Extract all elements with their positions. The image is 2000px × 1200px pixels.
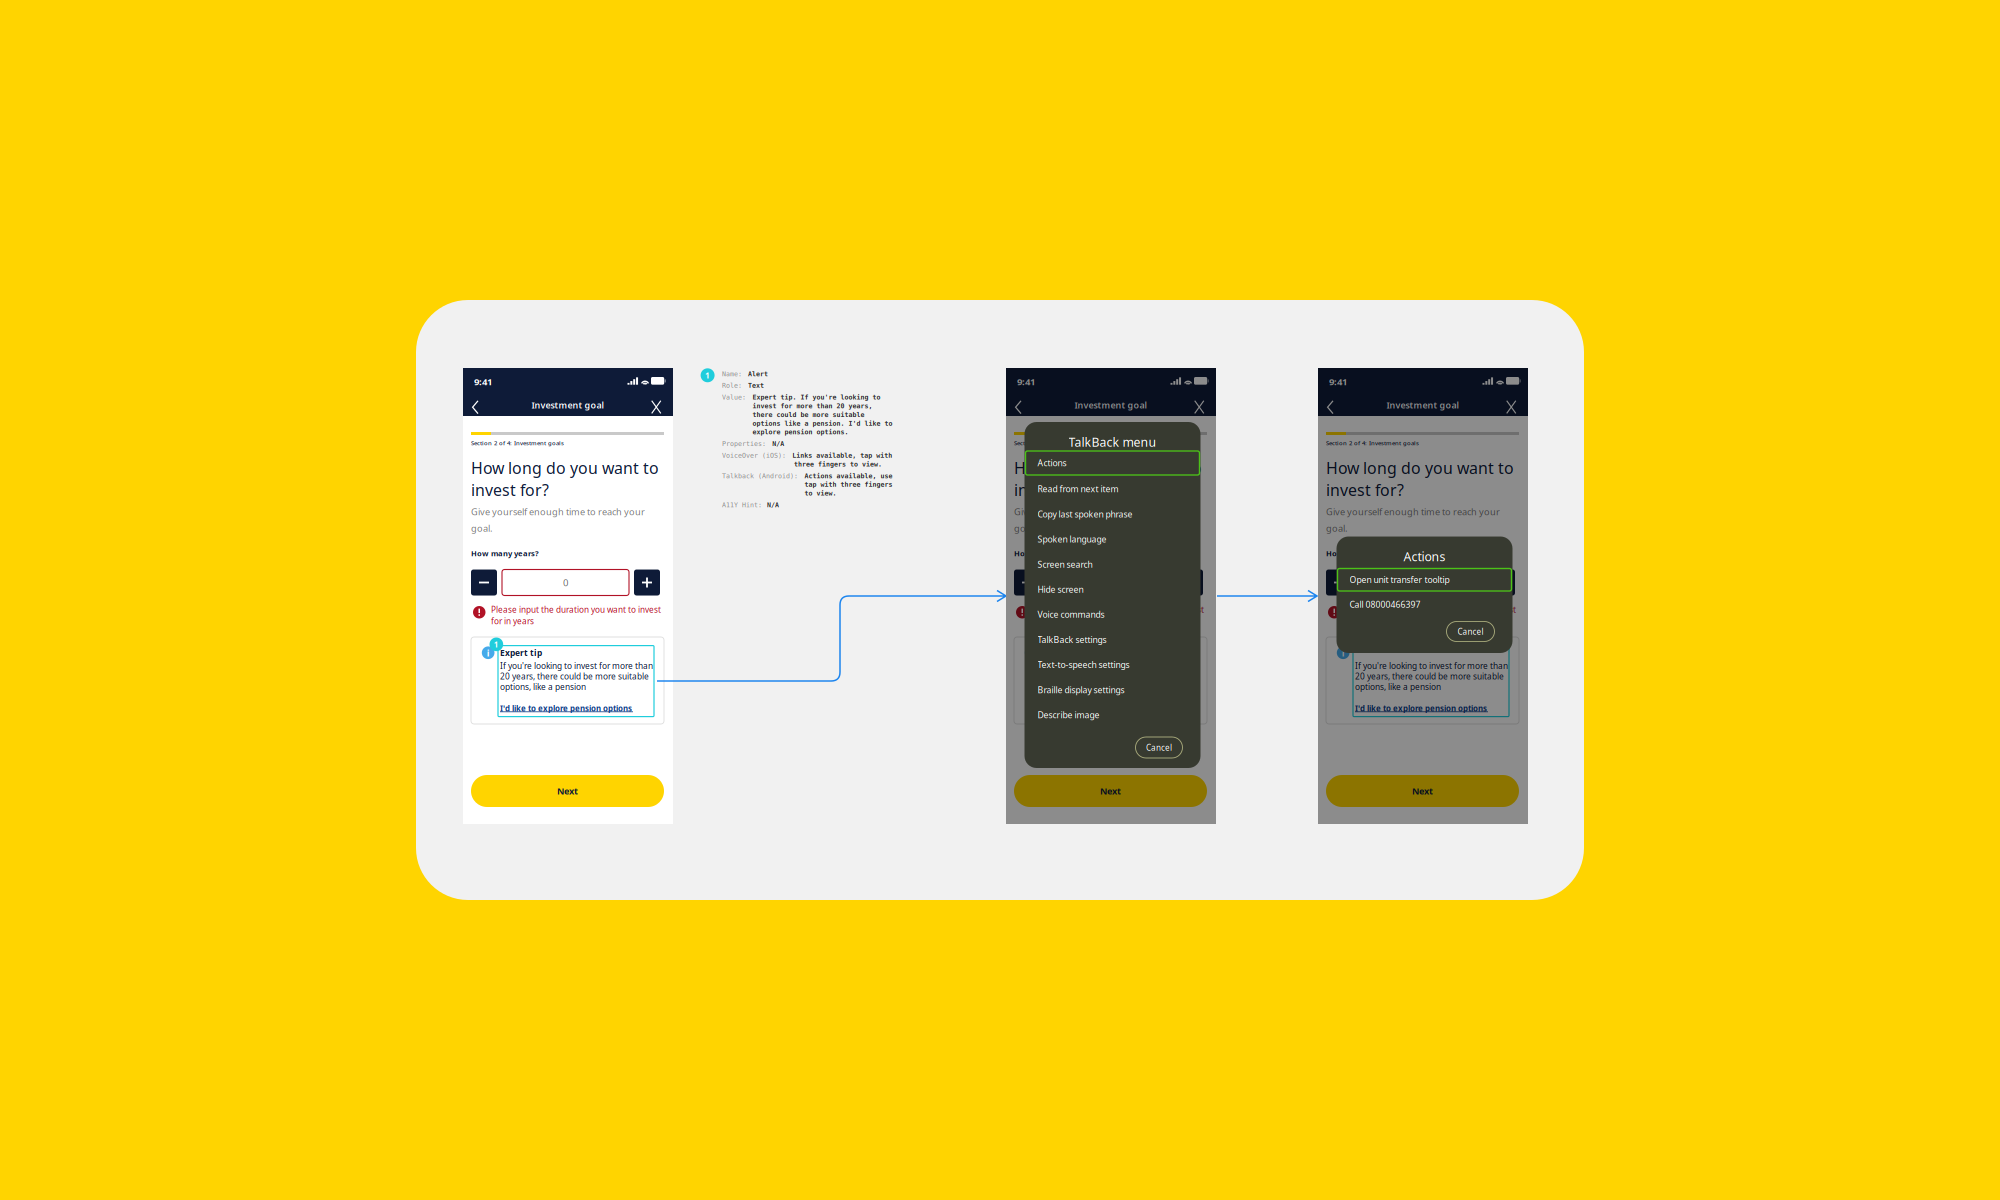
staticText: options, like a pension [1355,681,1441,692]
button[interactable]: Back [466,395,484,419]
staticText: Links available, tap with [792,452,892,459]
button[interactable]: Cancel [1135,737,1182,758]
staticText: Expert tip [500,647,542,658]
staticText: Investment goal [1386,399,1459,411]
staticText: i [487,646,490,659]
button[interactable]: Hide screen [1024,577,1200,602]
button[interactable]: Read from next item [1024,476,1200,501]
button[interactable]: Call 08000466397 [1336,594,1512,614]
staticText: Give yourself enough time to reach your [1014,505,1188,518]
staticText: tap with three fingers [805,481,893,488]
staticText: Open unit transfer tooltip [1349,574,1449,586]
staticText: Give yourself enough time to reach your [471,505,645,518]
staticText: Actions [1403,548,1445,565]
staticText: 0 [563,576,568,589]
staticText: options, like a pension [500,681,586,692]
button[interactable]: Back [1321,395,1339,419]
button[interactable]: Next [1014,775,1207,807]
button[interactable]: Decrease years [1014,569,1040,595]
button[interactable]: Describe image [1024,702,1200,727]
button[interactable]: Copy last spoken phrase [1024,502,1200,527]
button[interactable]: Back [1009,395,1027,419]
staticText: I'd like to explore pension options [500,703,632,714]
button[interactable]: Decrease years [1326,569,1352,595]
button[interactable]: Decrease years [471,569,497,595]
staticText: 9:41 [474,375,492,388]
staticText: Screen search [1037,558,1092,570]
staticText: Give yourself enough time to reach your [1326,505,1500,518]
staticText: TalkBack menu [1068,434,1156,450]
staticText: i [1342,646,1345,659]
button[interactable]: Text-to-speech settings [1024,652,1200,677]
staticText: Copy last spoken phrase [1037,508,1132,520]
staticText: Section 2 of 4: Investment goals [471,439,564,447]
staticText: 1 [494,639,499,650]
button[interactable]: Increase years [1177,569,1203,595]
staticText: Next [1412,785,1433,797]
button[interactable]: Voice commands [1024,602,1200,627]
button[interactable]: Open unit transfer tooltip [1337,568,1511,591]
staticText: goal. [1326,522,1347,534]
button[interactable]: Close [1501,395,1521,419]
staticText: Spoken language [1037,533,1106,545]
staticText: How many years? [471,548,539,558]
button[interactable]: Close [646,395,666,419]
staticText: for in years [491,615,534,627]
staticText: Hide screen [1037,583,1083,595]
staticText: Call 08000466397 [1349,599,1420,610]
staticText: to view. [805,489,837,497]
staticText: invest for? [1326,479,1404,501]
staticText: Braille display settings [1037,684,1124,696]
staticText: TalkBack settings [1037,634,1106,645]
staticText: Text [748,382,764,389]
staticText: N/A [767,501,779,509]
staticText: options, like a pension [1043,681,1129,692]
staticText: Investment goal [1074,399,1147,411]
staticText: Cancel [1146,742,1172,753]
staticText: options like a pension. I'd like to [752,419,892,427]
button[interactable]: Braille display settings [1024,677,1200,702]
staticText: Read from next item [1037,483,1118,495]
button[interactable]: Actions [1025,451,1199,475]
staticText: Describe image [1037,709,1099,721]
staticText: Role: [722,382,742,389]
staticText: Name: [722,370,742,378]
button[interactable]: Next [471,775,664,807]
button[interactable]: Increase years [1489,569,1515,595]
button[interactable]: Next [1326,775,1519,807]
staticText: Actions available, use [805,472,893,480]
staticText: Actions [1037,457,1066,469]
staticText: How many years? [1326,548,1394,558]
staticText: for in years [1034,615,1077,627]
staticText: If you're looking to invest for more tha… [1355,660,1508,671]
staticText: 9:41 [1017,375,1035,388]
staticText: 0 [1418,576,1423,589]
staticText: 20 years, there could be more suitable [1355,670,1504,682]
button[interactable]: Increase years [634,569,660,595]
button[interactable]: I'd like to explore pension options [1355,703,1495,713]
button[interactable]: Close [1189,395,1209,419]
button[interactable]: TalkBack settings [1024,627,1200,652]
staticText: I'd like to explore pension options [1355,703,1487,714]
staticText: Section 2 of 4: Investment goals [1326,439,1419,447]
button[interactable]: I'd like to explore pension options [1043,703,1183,713]
staticText: Please input the duration you want to in… [491,604,661,615]
staticText: Investment goal [531,399,604,411]
button[interactable]: I'd like to explore pension options [500,703,640,713]
staticText: Alert [748,370,768,378]
button[interactable]: Cancel [1446,621,1494,641]
button[interactable]: Spoken language [1024,527,1200,552]
staticText: explore pension options. [752,428,848,436]
staticText: I'd like to explore pension options [1043,703,1175,714]
staticText: invest for more than 20 years, [752,402,872,410]
staticText: How long do you want to [471,457,659,479]
staticText: A11Y Hint: [722,501,762,509]
button[interactable]: Screen search [1024,552,1200,577]
staticText: invest for? [1014,479,1092,501]
staticText: 1 [1037,639,1042,650]
staticText: three fingers to view. [794,460,882,468]
